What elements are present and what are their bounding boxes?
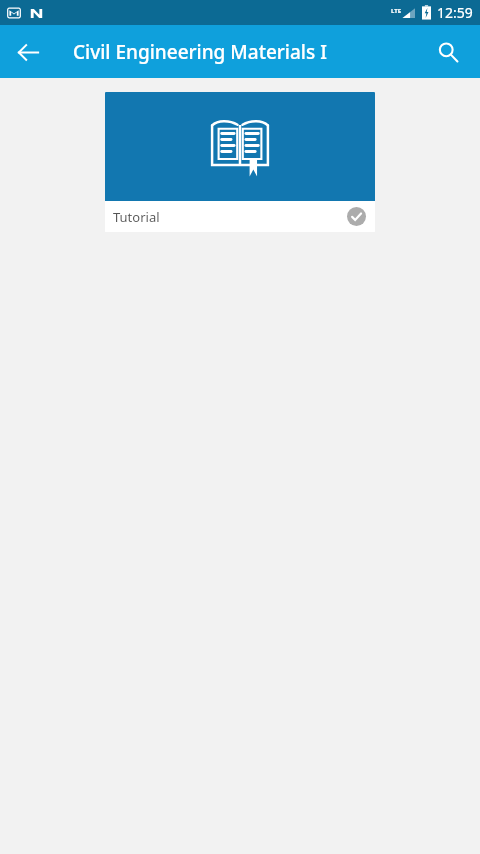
button[interactable]: Back [6,30,50,74]
button[interactable]: Search [426,30,470,74]
staticText: 12:59 [437,3,473,22]
staticText: LTE [391,7,402,15]
staticText: Civil Engineering Materials I [73,39,327,65]
button[interactable]: Tutorial [105,92,375,232]
staticText: Tutorial [113,208,160,226]
